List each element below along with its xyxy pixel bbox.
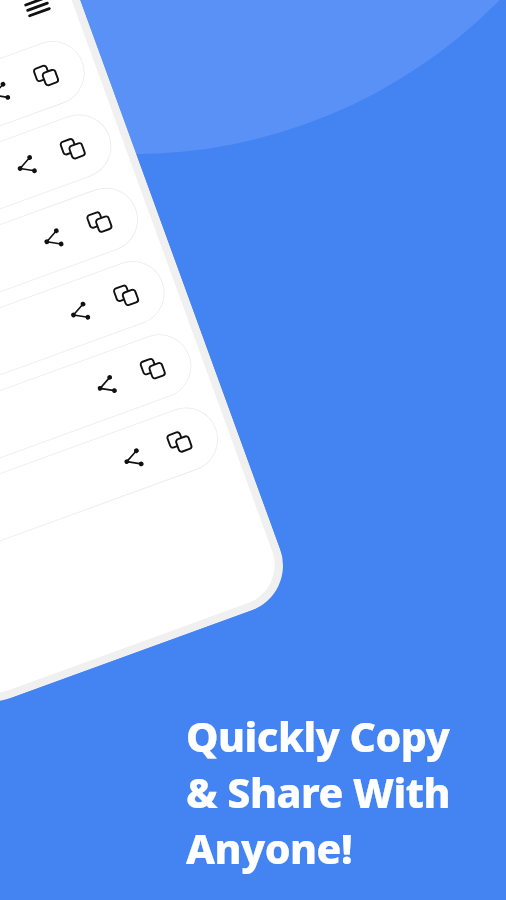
staticText: Quickly Copy xyxy=(186,708,450,764)
button[interactable]: Share xyxy=(111,437,154,481)
button[interactable]: Share xyxy=(84,364,128,408)
staticText: & Share With xyxy=(186,764,450,820)
button[interactable]: Menu xyxy=(11,0,62,32)
button[interactable]: Share xyxy=(0,179,147,346)
button[interactable]: Share xyxy=(0,399,227,566)
button[interactable]: Share xyxy=(0,32,94,200)
button[interactable]: Share xyxy=(0,105,120,273)
button[interactable]: Copy xyxy=(24,54,68,97)
button[interactable]: Copy xyxy=(104,274,148,317)
button[interactable]: Share xyxy=(4,144,47,188)
button[interactable]: Copy xyxy=(51,127,94,171)
button[interactable]: Share xyxy=(31,217,74,261)
staticText: Anyone! xyxy=(186,820,353,876)
button[interactable]: Copy xyxy=(78,200,121,244)
button[interactable]: Copy xyxy=(158,420,201,464)
button[interactable]: Share xyxy=(0,71,21,114)
button[interactable]: Share xyxy=(0,252,174,419)
button[interactable]: Share xyxy=(57,291,101,334)
button[interactable]: Share xyxy=(0,325,200,493)
button[interactable]: Copy xyxy=(131,347,175,390)
